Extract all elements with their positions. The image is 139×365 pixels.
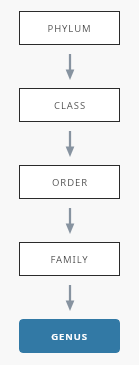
- button[interactable]: GENUS: [19, 319, 120, 353]
- button[interactable]: CLASS: [19, 88, 120, 122]
- other: Leads to next rank: [63, 285, 77, 311]
- button[interactable]: PHYLUM: [19, 11, 120, 45]
- other: Leads to next rank: [63, 54, 77, 80]
- staticText: CLASS: [54, 99, 86, 112]
- staticText: FAMILY: [50, 253, 89, 266]
- button[interactable]: ORDER: [19, 165, 120, 199]
- staticText: ORDER: [52, 176, 88, 189]
- staticText: GENUS: [51, 330, 88, 343]
- other: Leads to next rank: [63, 208, 77, 234]
- button[interactable]: FAMILY: [19, 242, 120, 276]
- staticText: PHYLUM: [47, 22, 92, 35]
- other: Leads to next rank: [63, 131, 77, 157]
